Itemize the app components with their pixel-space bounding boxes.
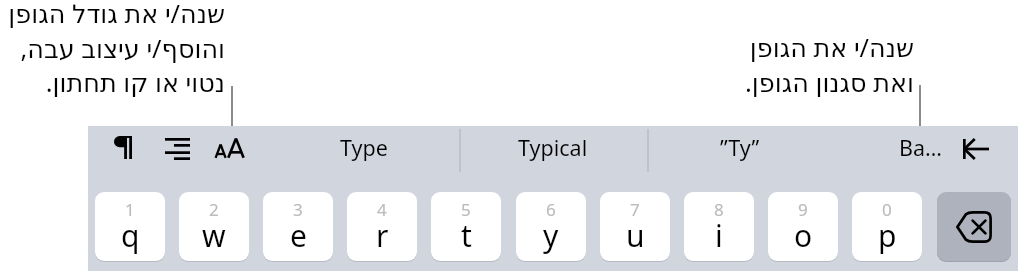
staticText: שנה/י את גודל הגופן והוסף/י עיצוב עבה, נ… bbox=[0, 0, 225, 99]
staticText: Type bbox=[340, 133, 388, 162]
staticText: 6 bbox=[546, 198, 556, 221]
staticText: e bbox=[290, 215, 307, 256]
staticText: o bbox=[794, 215, 813, 256]
button[interactable]: Typical bbox=[478, 132, 628, 162]
button[interactable]: 4 bbox=[347, 192, 417, 261]
button[interactable]: Paragraph bbox=[108, 131, 138, 164]
button[interactable]: 3 bbox=[263, 192, 333, 261]
button[interactable]: 7 bbox=[600, 192, 670, 261]
staticText: y bbox=[543, 215, 559, 256]
button[interactable]: 8 bbox=[684, 192, 754, 261]
staticText: r bbox=[376, 215, 389, 256]
staticText: u bbox=[626, 215, 645, 256]
button[interactable]: 0 bbox=[852, 192, 922, 261]
staticText: 2 bbox=[209, 198, 219, 221]
button[interactable]: Align right bbox=[158, 134, 196, 164]
staticText: q bbox=[121, 215, 140, 256]
button[interactable]: Text size bbox=[210, 133, 249, 163]
staticText: Ba… bbox=[899, 133, 943, 162]
button[interactable]: 1 bbox=[95, 192, 165, 261]
staticText: p bbox=[878, 215, 897, 256]
staticText: שנה/י את הגופן ואת סגנון הגופן. bbox=[614, 30, 914, 99]
staticText: 8 bbox=[714, 198, 724, 221]
staticText: Typical bbox=[518, 133, 588, 162]
staticText: 7 bbox=[630, 198, 640, 221]
staticText: 3 bbox=[293, 198, 303, 221]
staticText: t bbox=[461, 215, 472, 256]
button[interactable]: Backspace bbox=[937, 192, 1011, 261]
button[interactable]: Type bbox=[289, 132, 439, 162]
button[interactable]: 5 bbox=[431, 192, 501, 261]
button[interactable]: 6 bbox=[516, 192, 586, 261]
button[interactable]: 2 bbox=[179, 192, 249, 261]
staticText: 1 bbox=[125, 198, 135, 221]
staticText: w bbox=[202, 215, 226, 256]
button[interactable]: 9 bbox=[768, 192, 838, 261]
staticText: 9 bbox=[798, 198, 808, 221]
button[interactable]: Ba… bbox=[896, 130, 946, 164]
staticText: 0 bbox=[882, 198, 892, 221]
staticText: i bbox=[715, 215, 723, 256]
staticText: 4 bbox=[377, 198, 387, 221]
staticText: ”Ty” bbox=[720, 133, 760, 162]
button[interactable]: Previous bbox=[956, 134, 996, 164]
button[interactable]: ”Ty” bbox=[665, 132, 815, 162]
staticText: 5 bbox=[461, 198, 471, 221]
